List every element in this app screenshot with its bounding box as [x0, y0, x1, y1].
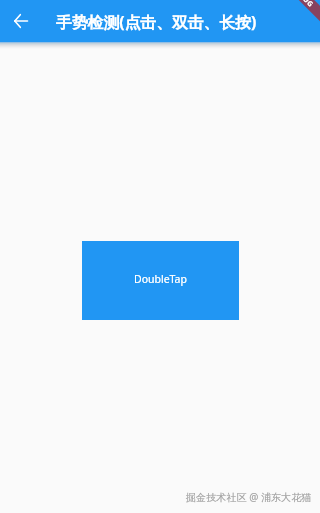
button[interactable]: Back: [8, 8, 34, 34]
staticText: DoubleTap: [134, 272, 187, 286]
staticText: 掘金技术社区 @ 浦东大花猫: [186, 490, 312, 504]
staticText: 手势检测(点击、双击、长按): [56, 11, 257, 33]
button[interactable]: DoubleTap: [82, 241, 239, 320]
staticText: DEBUG: [290, 0, 316, 10]
